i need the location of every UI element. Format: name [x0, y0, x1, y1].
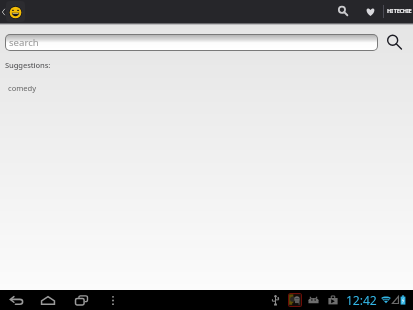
button[interactable]: Status: [272, 290, 406, 310]
staticText: 12:42: [346, 292, 377, 309]
button[interactable]: Favorites: [358, 0, 382, 23]
button[interactable]: comedy: [8, 83, 37, 93]
button[interactable]: More options: [103, 290, 123, 310]
button[interactable]: Recents: [68, 290, 94, 310]
button[interactable]: Up: [0, 0, 26, 23]
button[interactable]: search: [6, 35, 377, 50]
staticText: search: [9, 36, 39, 49]
button[interactable]: HI TECHIE: [387, 0, 412, 22]
button[interactable]: Back: [3, 290, 29, 310]
staticText: Suggestions:: [5, 60, 51, 70]
button[interactable]: Search: [383, 31, 406, 54]
button[interactable]: Search: [331, 0, 355, 23]
staticText: HI TECHIE: [387, 7, 412, 15]
button[interactable]: Home: [35, 290, 61, 310]
